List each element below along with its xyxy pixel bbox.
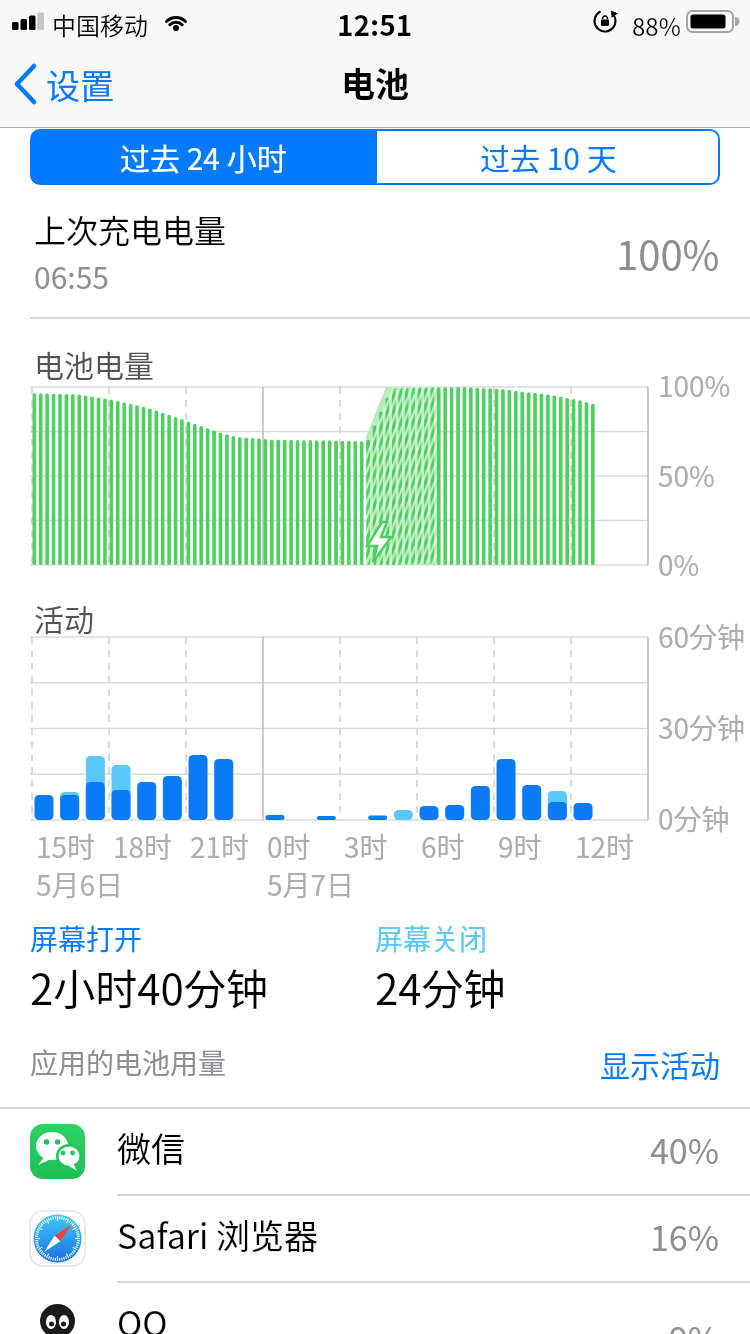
staticText: 微信 — [117, 1123, 185, 1172]
staticText: 0% — [658, 544, 700, 585]
button[interactable]: 设置 — [10, 60, 130, 110]
staticText: 6时 — [421, 826, 465, 867]
staticText: 屏幕打开 — [30, 918, 143, 959]
button[interactable] — [30, 129, 379, 185]
staticText: 15时 — [36, 826, 96, 867]
staticText: 显示活动 — [600, 1042, 720, 1085]
staticText: 3时 — [344, 826, 388, 867]
staticText: 12时 — [575, 826, 635, 867]
staticText: 2小时40分钟 — [30, 956, 268, 1017]
staticText: 5月6日 — [36, 864, 124, 905]
staticText: 设置 — [46, 60, 114, 109]
button[interactable]: 显示活动 — [590, 1036, 730, 1080]
staticText: 100% — [616, 224, 720, 282]
staticText: 应用的电池用量 — [30, 1042, 227, 1083]
staticText: 9% — [669, 1313, 720, 1334]
staticText: 30分钟 — [658, 707, 746, 748]
staticText: 中国移动 — [52, 7, 148, 42]
button[interactable] — [377, 131, 718, 183]
staticText: 过去 24 小时 — [120, 135, 287, 178]
staticText: 06:55 — [34, 254, 109, 297]
staticText: 0时 — [267, 826, 311, 867]
staticText: QQ — [117, 1297, 168, 1334]
staticText: 16% — [650, 1212, 720, 1261]
staticText: 21时 — [190, 826, 250, 867]
staticText: 100% — [658, 365, 731, 406]
staticText: 40% — [650, 1125, 720, 1174]
staticText: 50% — [658, 455, 715, 496]
staticText: 12:51 — [337, 4, 413, 45]
button[interactable]: Safari 浏览器 — [0, 1196, 750, 1282]
staticText: Safari 浏览器 — [117, 1210, 319, 1259]
staticText: 18时 — [113, 826, 173, 867]
staticText: 9时 — [498, 826, 542, 867]
staticText: 电池电量 — [34, 342, 154, 385]
staticText: 24分钟 — [375, 956, 506, 1017]
staticText: 5月7日 — [267, 864, 355, 905]
staticText: 上次充电电量 — [34, 206, 227, 252]
staticText: 60分钟 — [658, 616, 746, 657]
staticText: 屏幕关闭 — [375, 918, 488, 959]
staticText: 0分钟 — [658, 798, 730, 839]
staticText: 活动 — [34, 596, 94, 639]
button[interactable]: 微信 — [0, 1109, 750, 1195]
staticText: 88% — [632, 8, 681, 43]
staticText: 电池 — [341, 58, 409, 107]
button[interactable]: QQ — [0, 1283, 750, 1334]
staticText: 过去 10 天 — [480, 135, 617, 178]
